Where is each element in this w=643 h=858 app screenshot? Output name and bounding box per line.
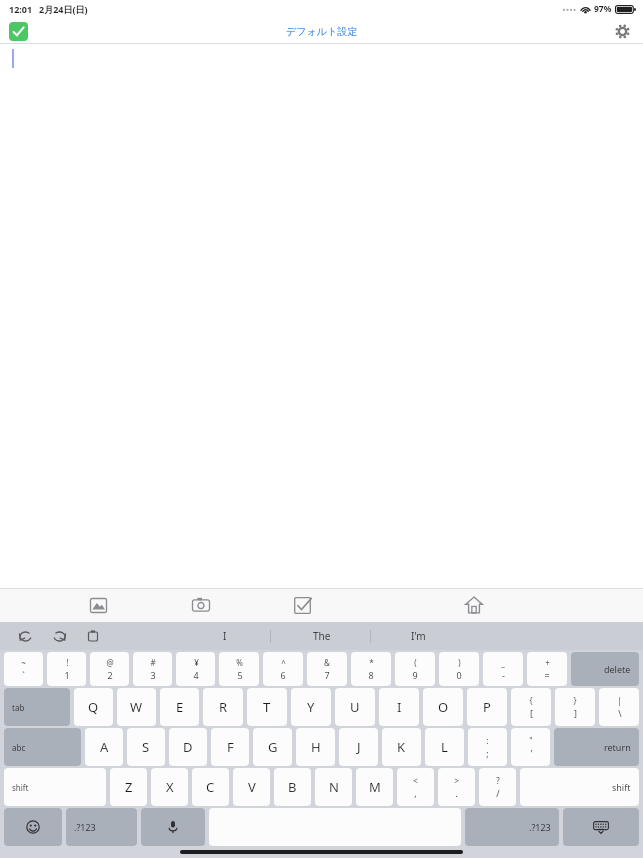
button[interactable]: Photo library (82, 589, 114, 621)
button[interactable]: Paste (82, 625, 104, 647)
button[interactable]: R (203, 688, 243, 726)
staticText: W (130, 698, 143, 716)
button[interactable]: # (133, 652, 172, 686)
button[interactable]: D (169, 728, 207, 766)
button[interactable]: Dictation (141, 808, 205, 846)
button[interactable]: O (423, 688, 463, 726)
button[interactable]: .?123 (66, 808, 137, 846)
button[interactable]: I (379, 688, 419, 726)
button[interactable]: } (555, 688, 595, 726)
button[interactable]: delete (571, 652, 639, 686)
staticText: G (268, 738, 278, 756)
button[interactable]: J (339, 728, 378, 766)
button[interactable]: ( (395, 652, 435, 686)
staticText: ' (530, 747, 533, 759)
staticText: 6 (280, 669, 286, 681)
button[interactable]: { (511, 688, 551, 726)
button[interactable]: Q (74, 688, 113, 726)
staticText: .?123 (74, 821, 96, 833)
button[interactable]: * (351, 652, 391, 686)
staticText: { (529, 695, 533, 706)
button[interactable]: T (247, 688, 287, 726)
button[interactable]: < (397, 768, 434, 806)
button[interactable]: _ (483, 652, 523, 686)
staticText: A (100, 738, 109, 756)
button[interactable]: N (315, 768, 352, 806)
button[interactable]: Emoji (4, 808, 62, 846)
staticText: ? (496, 775, 500, 786)
button[interactable]: B (274, 768, 311, 806)
button[interactable]: " (511, 728, 550, 766)
button[interactable]: ? (479, 768, 516, 806)
button[interactable]: Hide keyboard (563, 808, 639, 846)
button[interactable]: Checklist (286, 589, 318, 621)
button[interactable]: | (599, 688, 639, 726)
button[interactable]: L (425, 728, 464, 766)
button[interactable]: C (192, 768, 229, 806)
button[interactable]: ~ (4, 652, 43, 686)
button[interactable]: P (467, 688, 507, 726)
button[interactable]: A (85, 728, 123, 766)
button[interactable]: : (468, 728, 507, 766)
button[interactable]: ) (439, 652, 479, 686)
button[interactable]: tab (4, 688, 70, 726)
button[interactable]: return (554, 728, 639, 766)
button[interactable]: デフォルト設定 (274, 21, 370, 42)
button[interactable]: M (356, 768, 393, 806)
staticText: & (324, 657, 330, 668)
staticText: 2 (107, 669, 113, 681)
button[interactable]: F (211, 728, 249, 766)
button[interactable]: ¥ (176, 652, 215, 686)
staticText: D (183, 738, 193, 756)
button[interactable]: + (527, 652, 567, 686)
button[interactable]: > (438, 768, 475, 806)
button[interactable]: I'm (384, 622, 452, 650)
button[interactable]: @ (90, 652, 129, 686)
button[interactable]: App icon (9, 22, 28, 41)
button[interactable]: X (151, 768, 188, 806)
button[interactable]: V (233, 768, 270, 806)
button[interactable]: U (335, 688, 375, 726)
button[interactable]: Camera (185, 589, 217, 621)
button[interactable]: Settings (611, 20, 633, 42)
staticText: ¥ (194, 657, 199, 668)
button[interactable]: abc (4, 728, 81, 766)
button[interactable]: & (307, 652, 347, 686)
button[interactable]: Z (110, 768, 147, 806)
staticText: } (573, 695, 577, 706)
button[interactable]: % (219, 652, 259, 686)
staticText: 12:01 (9, 3, 33, 15)
staticText: F (227, 738, 234, 756)
staticText: Y (307, 698, 315, 716)
staticText: . (455, 787, 458, 799)
button[interactable]: K (382, 728, 421, 766)
button[interactable]: I (191, 622, 259, 650)
button[interactable]: H (296, 728, 335, 766)
button[interactable]: Redo (48, 625, 70, 647)
button[interactable]: .?123 (465, 808, 559, 846)
staticText: ) (458, 657, 461, 668)
staticText: : (486, 735, 489, 746)
staticText: > (454, 775, 459, 786)
button[interactable]: The (288, 622, 356, 650)
button[interactable]: S (127, 728, 165, 766)
staticText: = (544, 669, 550, 681)
button[interactable]: G (253, 728, 292, 766)
staticText: ^ (281, 657, 286, 668)
staticText: abc (12, 742, 26, 753)
button[interactable]: shift (520, 768, 639, 806)
button[interactable]: E (160, 688, 199, 726)
staticText: tab (12, 702, 25, 713)
button[interactable]: W (117, 688, 156, 726)
staticText: @ (106, 657, 114, 668)
button[interactable]: shift (4, 768, 106, 806)
button[interactable]: ^ (263, 652, 303, 686)
staticText: L (441, 738, 448, 756)
staticText: shift (612, 781, 631, 793)
button[interactable]: Export (458, 589, 490, 621)
button[interactable]: Y (291, 688, 331, 726)
staticText: 7 (324, 669, 330, 681)
button[interactable]: ! (47, 652, 86, 686)
button[interactable]: Undo (14, 625, 36, 647)
